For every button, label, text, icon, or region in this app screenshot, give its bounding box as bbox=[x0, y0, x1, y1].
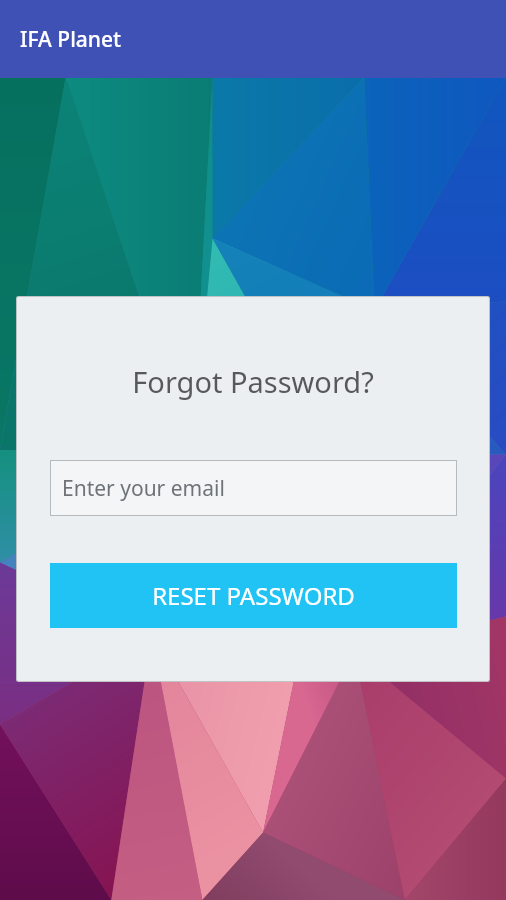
staticText: RESET PASSWORD bbox=[152, 579, 355, 612]
button[interactable]: Enter your email bbox=[50, 460, 457, 516]
button[interactable]: RESET PASSWORD bbox=[50, 563, 457, 628]
staticText: IFA Planet bbox=[20, 25, 122, 54]
staticText: Enter your email bbox=[62, 474, 225, 503]
staticText: Forgot Password? bbox=[132, 362, 374, 401]
